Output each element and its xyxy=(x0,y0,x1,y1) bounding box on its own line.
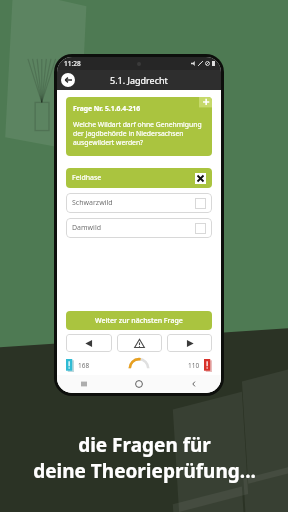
button[interactable]: Next xyxy=(167,334,212,352)
staticText: die Fragen für xyxy=(78,432,211,458)
staticText: Feldhase xyxy=(72,173,102,183)
staticText: 11:28 xyxy=(64,59,81,68)
button[interactable]: Home xyxy=(135,380,143,388)
button[interactable]: Report question xyxy=(117,334,162,352)
button[interactable]: Bookmark xyxy=(199,97,212,110)
staticText: 168 xyxy=(78,361,90,370)
button[interactable]: Learned count xyxy=(66,359,74,372)
button[interactable]: Back xyxy=(61,73,75,87)
staticText: 5.1. Jagdrecht xyxy=(110,74,168,86)
button[interactable]: Recents xyxy=(80,380,88,388)
staticText: Schwarzwild xyxy=(72,198,113,208)
button[interactable]: Weiter zur nächsten Frage xyxy=(66,311,212,330)
staticText: 110 xyxy=(188,361,200,370)
button[interactable]: Damwild xyxy=(66,218,212,238)
staticText: Weiter zur nächsten Frage xyxy=(95,316,183,326)
staticText: deine Theorieprüfung... xyxy=(33,458,256,484)
button[interactable]: Wrong count xyxy=(204,359,212,372)
button[interactable]: Back xyxy=(190,380,198,388)
staticText: Frage Nr. 5.1.6.4-216 xyxy=(73,104,141,113)
button[interactable]: Schwarzwild xyxy=(66,193,212,213)
staticText: Damwild xyxy=(72,223,102,233)
button[interactable]: Previous xyxy=(66,334,112,352)
button[interactable]: Feldhase xyxy=(66,168,212,188)
staticText: Welche Wildart darf ohne Genehmigung der… xyxy=(73,120,205,147)
